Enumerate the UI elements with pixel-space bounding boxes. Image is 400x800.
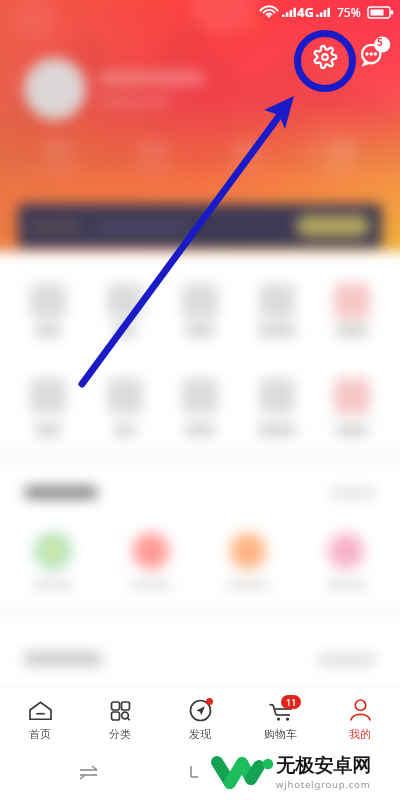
staticText: 发现 — [189, 727, 211, 741]
button[interactable]: 11 — [240, 698, 320, 741]
button[interactable]: 发现 — [160, 698, 240, 741]
button[interactable] — [105, 142, 200, 172]
button[interactable] — [13, 522, 93, 598]
staticText: 5 — [377, 35, 383, 49]
button[interactable] — [208, 522, 288, 598]
button[interactable] — [160, 366, 240, 446]
staticText: 购物车 — [264, 727, 297, 741]
staticText: 分类 — [109, 727, 131, 741]
button[interactable]: Messages — [356, 32, 394, 70]
button[interactable] — [200, 142, 295, 172]
button[interactable] — [312, 366, 392, 446]
staticText: 我的 — [349, 727, 371, 741]
staticText: 11 — [286, 696, 297, 708]
button[interactable] — [85, 366, 165, 446]
button[interactable] — [237, 366, 317, 446]
button[interactable] — [24, 58, 324, 120]
button[interactable] — [306, 522, 386, 598]
button[interactable]: Settings — [301, 33, 349, 81]
button[interactable]: 分类 — [80, 698, 160, 741]
button[interactable] — [18, 204, 382, 248]
button[interactable] — [160, 271, 240, 347]
staticText: 4G — [297, 3, 314, 21]
button[interactable] — [8, 271, 88, 347]
staticText: 75% — [337, 4, 361, 20]
button[interactable]: 首页 — [0, 698, 80, 741]
staticText: 无极安卓网 — [276, 754, 371, 778]
button[interactable] — [10, 142, 105, 172]
button[interactable] — [237, 271, 317, 347]
button[interactable] — [312, 271, 392, 347]
button[interactable] — [295, 142, 390, 172]
button[interactable] — [111, 522, 191, 598]
button[interactable] — [85, 271, 165, 347]
button[interactable] — [318, 654, 376, 665]
button[interactable] — [8, 366, 88, 446]
button[interactable]: 我的 — [320, 698, 400, 741]
staticText: 首页 — [29, 727, 51, 741]
staticText: wjhotelgroup.com — [276, 778, 371, 791]
